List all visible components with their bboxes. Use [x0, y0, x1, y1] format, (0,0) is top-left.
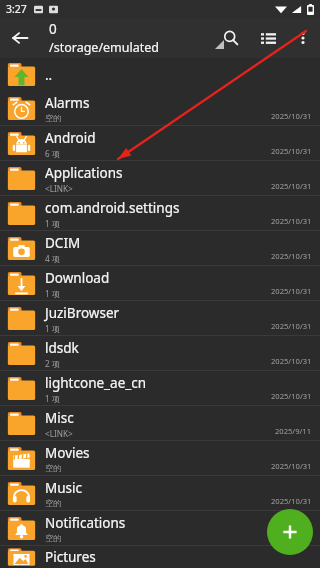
staticText: 2025/10/31 — [271, 251, 312, 261]
staticText: 2025/10/31 — [271, 531, 312, 541]
staticText: 2025/10/31 — [271, 356, 312, 366]
button[interactable]: Download — [0, 266, 320, 301]
staticText: 2025/10/31 — [271, 461, 312, 471]
button[interactable]: Pictures — [0, 546, 320, 568]
button[interactable]: More options — [286, 21, 320, 55]
button[interactable]: Search — [212, 19, 250, 57]
staticText: 2025/10/31 — [271, 181, 312, 191]
staticText: Music — [45, 479, 83, 497]
button[interactable]: DCIM — [0, 231, 320, 266]
staticText: 2025/10/31 — [271, 321, 312, 331]
staticText: Android — [45, 129, 96, 147]
staticText: Movies — [45, 444, 90, 462]
staticText: 空的 — [45, 113, 62, 123]
staticText: 3:27 — [6, 2, 27, 16]
button[interactable]: Back — [0, 18, 40, 58]
button[interactable]: View mode — [250, 20, 286, 56]
staticText: 0 — [49, 20, 57, 38]
staticText: 2025/10/31 — [271, 391, 312, 401]
staticText: 空的 — [45, 463, 62, 473]
staticText: com.android.settings — [45, 199, 180, 217]
staticText: /storage/emulated — [49, 39, 159, 56]
staticText: ldsdk — [45, 339, 79, 357]
staticText: Applications — [45, 164, 123, 182]
button[interactable]: JuziBrowser — [0, 301, 320, 336]
staticText: JuziBrowser — [45, 304, 120, 322]
staticText: 2025/10/31 — [271, 216, 312, 226]
button[interactable]: .. — [0, 58, 320, 91]
staticText: 4 项 — [45, 253, 60, 264]
staticText: 2025/9/11 — [275, 426, 312, 436]
staticText: .. — [45, 66, 53, 84]
staticText: 空的 — [45, 533, 62, 543]
staticText: 2 项 — [45, 358, 60, 369]
staticText: Notifications — [45, 514, 126, 532]
staticText: Download — [45, 269, 110, 287]
button[interactable]: Misc — [0, 406, 320, 441]
button[interactable]: ldsdk — [0, 336, 320, 371]
staticText: 2025/10/31 — [271, 496, 312, 506]
staticText: 2025/10/31 — [271, 286, 312, 296]
button[interactable]: Music — [0, 476, 320, 511]
staticText: 2025/10/31 — [271, 146, 312, 156]
button[interactable]: Notifications — [0, 511, 320, 546]
staticText: 1 项 — [45, 288, 60, 299]
staticText: 1 项 — [45, 218, 60, 229]
staticText: Pictures — [45, 548, 96, 566]
staticText: Misc — [45, 409, 74, 427]
staticText: 空的 — [45, 498, 62, 508]
staticText: 1 项 — [45, 323, 60, 334]
staticText: DCIM — [45, 234, 81, 252]
button[interactable]: com.android.settings — [0, 196, 320, 231]
button[interactable]: Android — [0, 126, 320, 161]
button[interactable]: Add — [267, 509, 313, 555]
staticText: <LINK> — [45, 183, 73, 194]
button[interactable]: Applications — [0, 161, 320, 196]
staticText: Alarms — [45, 94, 90, 112]
staticText: 1 项 — [45, 393, 60, 404]
button[interactable]: Movies — [0, 441, 320, 476]
staticText: lightcone_ae_cn — [45, 374, 147, 392]
staticText: <LINK> — [45, 428, 73, 439]
button[interactable]: Alarms — [0, 91, 320, 126]
button[interactable]: lightcone_ae_cn — [0, 371, 320, 406]
staticText: 2025/10/31 — [271, 111, 312, 121]
staticText: 6 项 — [45, 148, 60, 159]
